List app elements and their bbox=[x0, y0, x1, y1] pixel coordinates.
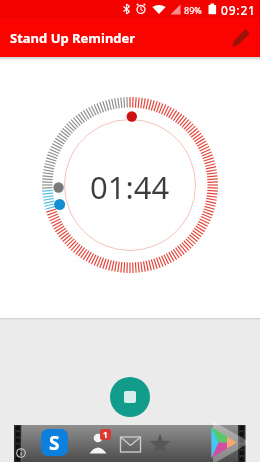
staticText: 89% bbox=[184, 4, 202, 16]
staticText: Stand Up Reminder bbox=[10, 29, 136, 47]
staticText: 1 bbox=[103, 429, 108, 440]
staticText: 09:21 bbox=[221, 2, 256, 18]
button[interactable]: S bbox=[0, 425, 260, 462]
button[interactable] bbox=[110, 377, 150, 417]
staticText: S bbox=[49, 430, 60, 456]
button[interactable] bbox=[221, 18, 260, 57]
button[interactable]: S bbox=[41, 429, 68, 456]
staticText: 01:44 bbox=[90, 166, 170, 208]
